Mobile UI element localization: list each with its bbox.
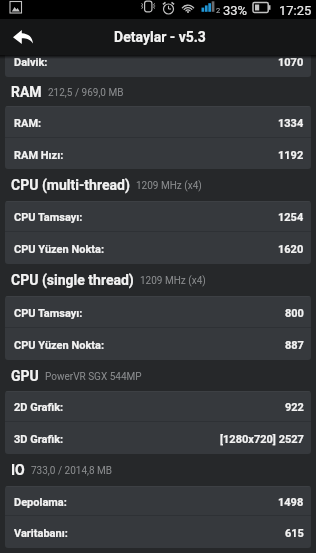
staticText: PowerVR SGX 544MP: [45, 371, 142, 383]
staticText: 2D Grafik:: [14, 401, 64, 414]
staticText: RAM:: [14, 117, 42, 130]
staticText: 17:25: [279, 3, 312, 18]
staticText: CPU (multi-thread): [11, 177, 130, 193]
button[interactable]: Dalvik:: [5, 55, 311, 77]
staticText: 1192: [278, 149, 304, 162]
button[interactable]: CPU Yüzen Nokta:: [5, 232, 311, 264]
staticText: GPU: [11, 368, 39, 384]
staticText: Detaylar - v5.3: [114, 29, 206, 45]
staticText: 1254: [278, 211, 304, 224]
staticText: 887: [285, 339, 304, 352]
button[interactable]: Varitabanı:: [5, 516, 311, 548]
staticText: 2: [216, 6, 221, 15]
button[interactable]: RAM:: [5, 106, 311, 138]
button[interactable]: RAM Hızı:: [5, 138, 311, 169]
staticText: CPU Yüzen Nokta:: [14, 339, 104, 352]
staticText: [1280x720] 2527: [220, 433, 304, 446]
button[interactable]: Back: [7, 21, 39, 53]
staticText: 615: [285, 527, 304, 540]
staticText: 800: [285, 307, 304, 320]
staticText: Dalvik:: [14, 56, 48, 69]
button[interactable]: 2D Grafik:: [5, 391, 311, 422]
staticText: 733,0 / 2014,8 MB: [31, 465, 113, 477]
staticText: CPU Tamsayı:: [14, 307, 83, 320]
staticText: 922: [285, 401, 304, 414]
staticText: 1498: [278, 496, 304, 509]
button[interactable]: CPU Tamsayı:: [5, 296, 311, 328]
staticText: IO: [11, 462, 25, 478]
staticText: 1334: [278, 117, 304, 130]
staticText: RAM: [11, 84, 42, 100]
staticText: CPU Yüzen Nokta:: [14, 243, 104, 256]
staticText: 212,5 / 969,0 MB: [48, 87, 124, 99]
staticText: Varitabanı:: [14, 527, 68, 540]
button[interactable]: Depolama:: [5, 486, 311, 516]
staticText: 3D Grafik:: [14, 433, 64, 446]
button[interactable]: CPU Yüzen Nokta:: [5, 328, 311, 360]
staticText: RAM Hızı:: [14, 149, 64, 162]
staticText: 1209 MHz (x4): [136, 180, 202, 192]
staticText: 1209 MHz (x4): [140, 275, 206, 287]
staticText: CPU Tamsayı:: [14, 211, 83, 224]
staticText: Depolama:: [14, 496, 67, 509]
staticText: 1070: [278, 56, 304, 69]
button[interactable]: CPU Tamsayı:: [5, 201, 311, 232]
staticText: 1620: [278, 243, 304, 256]
staticText: 33%: [223, 3, 248, 18]
staticText: CPU (single thread): [11, 272, 134, 288]
button[interactable]: 3D Grafik:: [5, 422, 311, 454]
